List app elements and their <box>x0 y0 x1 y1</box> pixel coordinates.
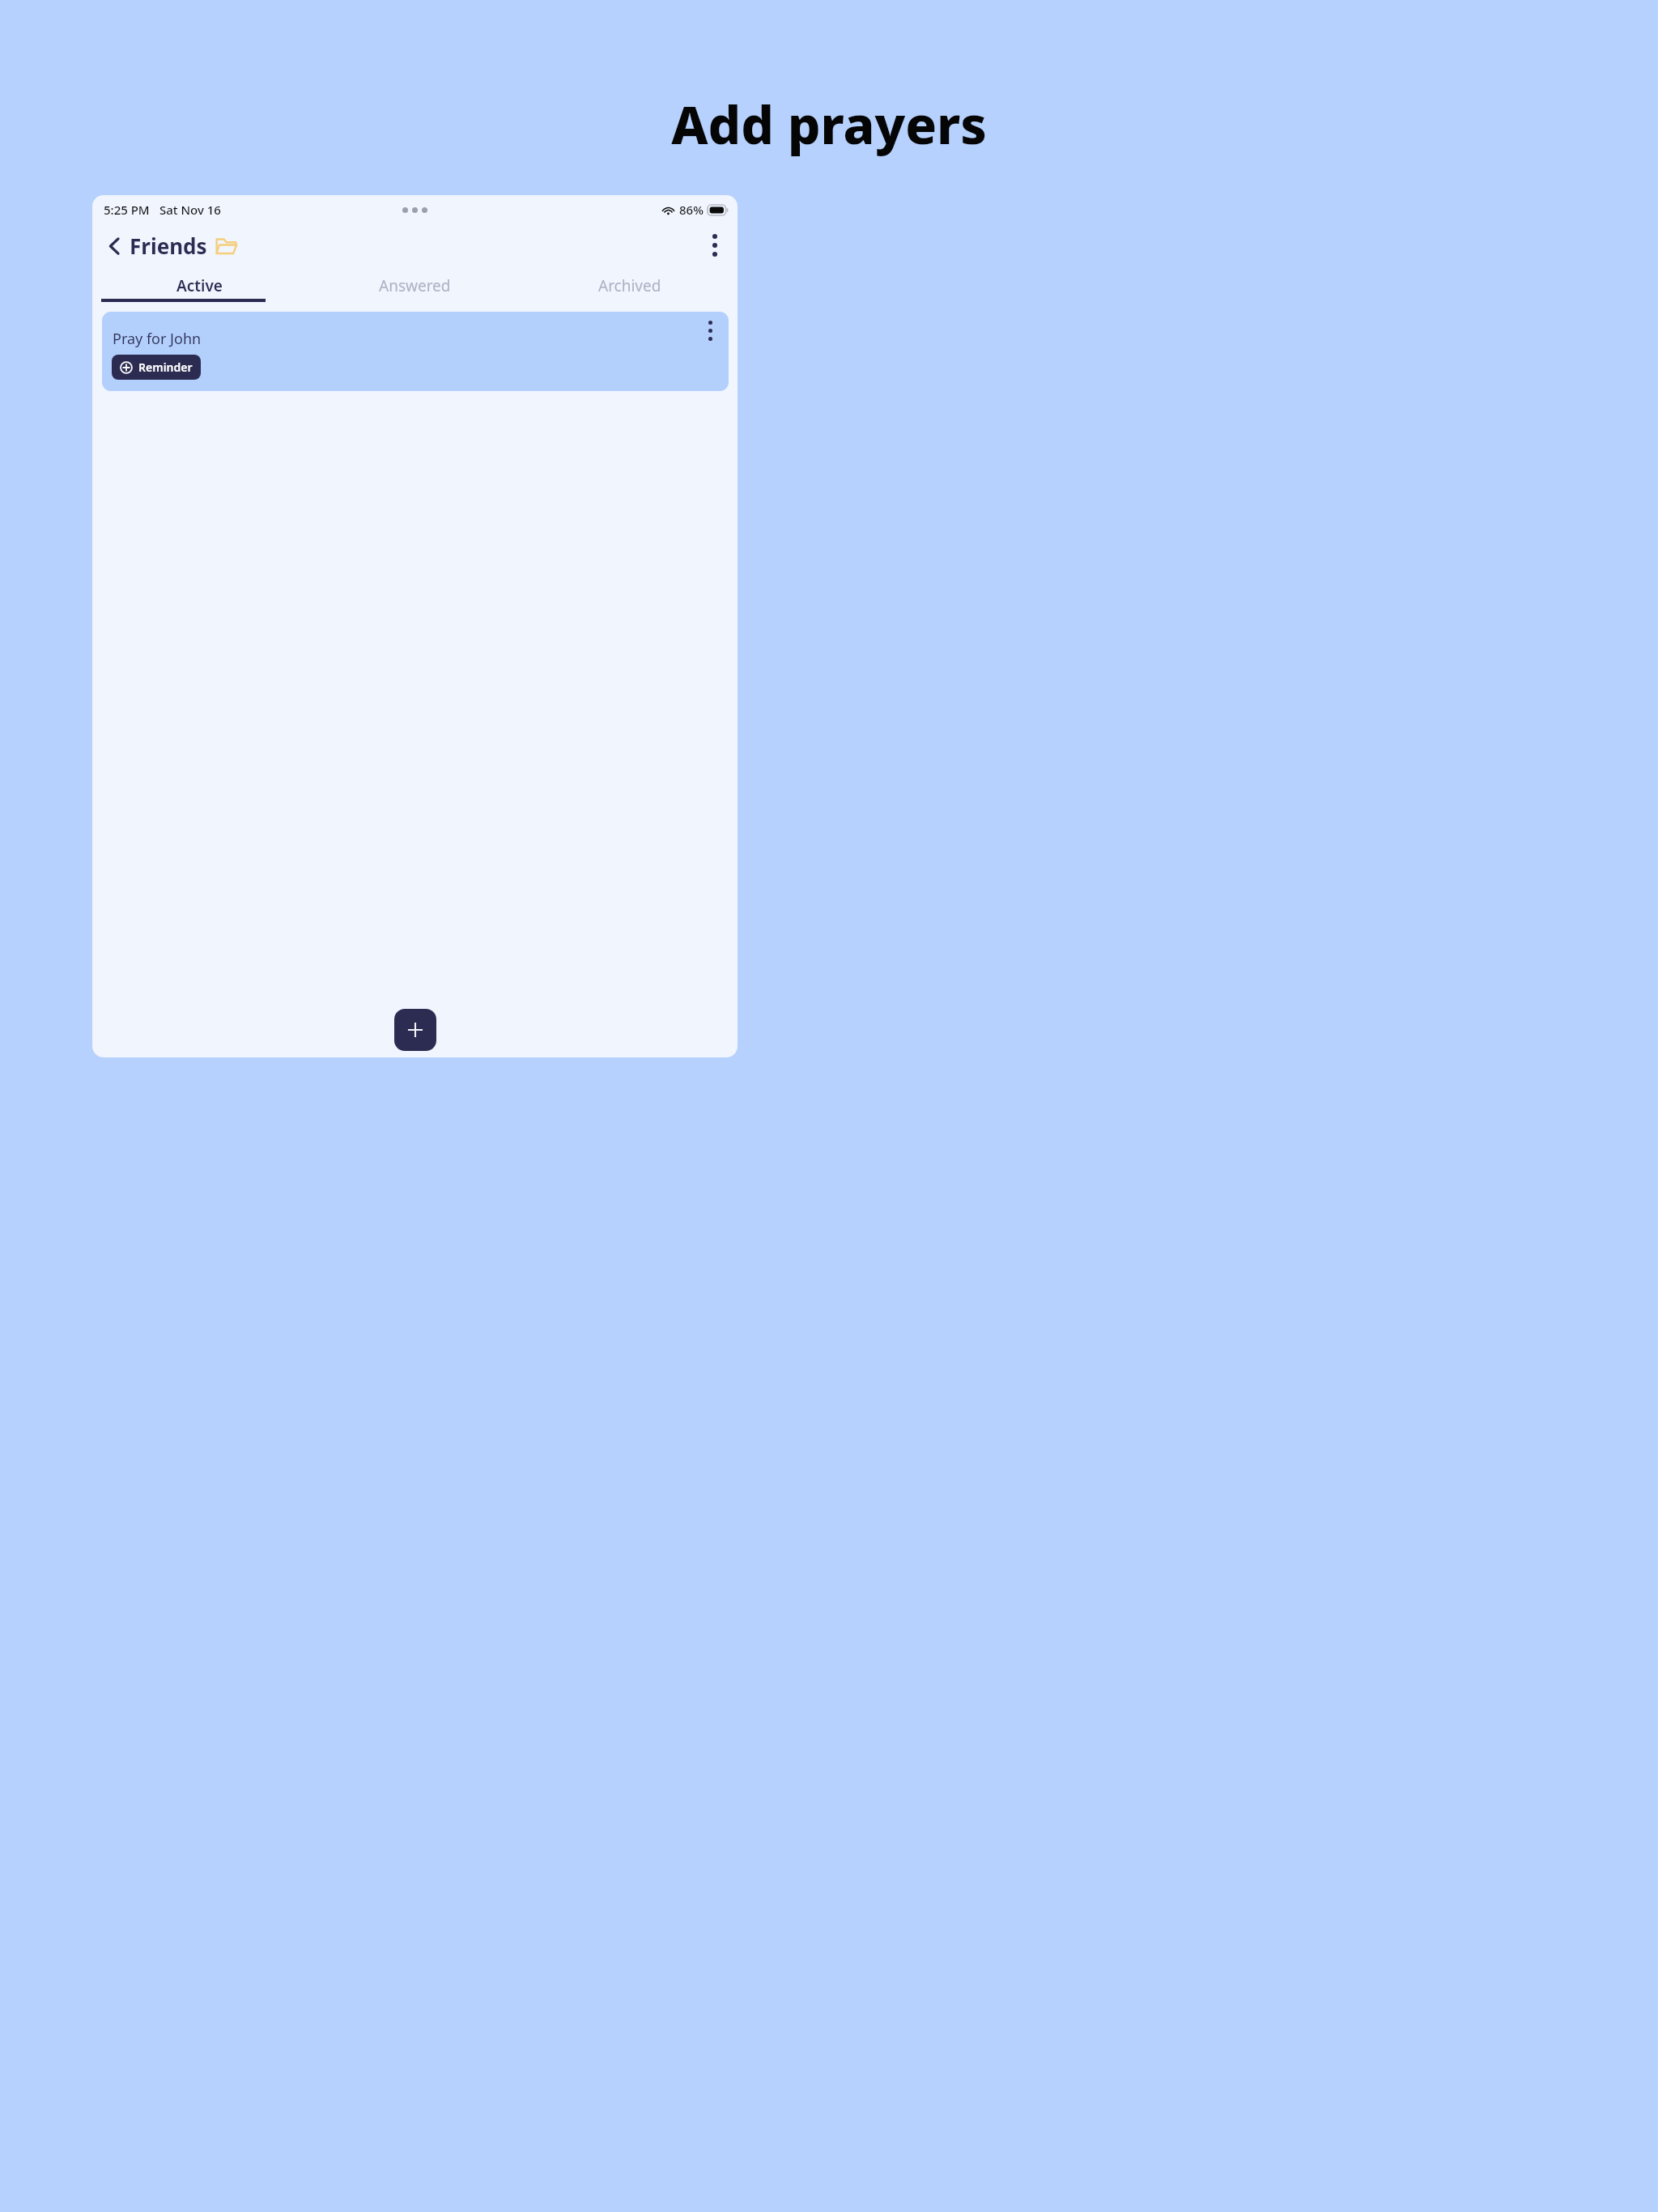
button[interactable]: Back <box>104 232 237 260</box>
staticText: Sat Nov 16 <box>159 202 221 218</box>
button[interactable]: Archived <box>522 266 738 309</box>
staticText: Pray for John <box>113 329 202 349</box>
button[interactable]: Prayer options <box>698 318 722 342</box>
staticText: 86% <box>679 202 704 218</box>
staticText: Archived <box>598 275 661 296</box>
staticText: Friends <box>130 232 207 260</box>
staticText: Add prayers <box>0 89 1658 160</box>
staticText: Active <box>176 275 223 296</box>
button[interactable]: Active <box>92 266 307 309</box>
button[interactable]: More options <box>700 231 729 260</box>
button[interactable]: Pray for John <box>102 312 729 391</box>
staticText: Reminder <box>138 359 193 375</box>
staticText: 5:25 PM <box>104 202 150 218</box>
button[interactable]: Reminder <box>112 355 201 380</box>
button[interactable]: Add prayer <box>394 1009 436 1051</box>
other: Back <box>104 236 125 257</box>
staticText: Answered <box>379 275 451 296</box>
button[interactable]: Answered <box>307 266 522 309</box>
